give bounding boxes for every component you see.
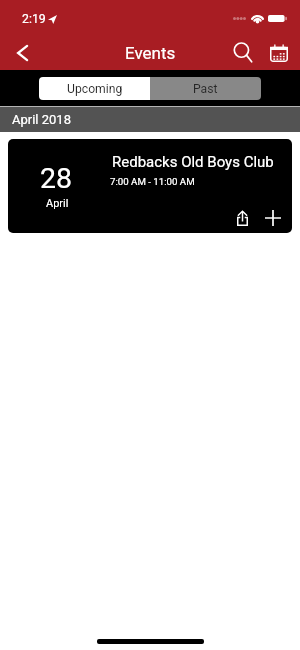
button[interactable]: Search [228,36,262,70]
button[interactable]: Add [260,205,286,231]
button[interactable]: Share [229,205,255,231]
staticText: Events [125,43,176,63]
button[interactable]: 28 [8,139,292,233]
button[interactable]: Upcoming [39,77,150,100]
staticText: 2:19 [22,12,46,26]
staticText: 7:00 AM - 11:00 AM [110,176,195,187]
staticText: Past [193,82,218,96]
staticText: April [46,197,69,210]
staticText: April 2018 [12,112,71,127]
button[interactable]: Back [8,39,36,67]
staticText: 28 [40,162,73,195]
button[interactable]: Calendar [262,36,296,70]
button[interactable]: Past [150,77,261,100]
staticText: Redbacks Old Boys Club [112,153,274,171]
staticText: Upcoming [67,82,123,96]
